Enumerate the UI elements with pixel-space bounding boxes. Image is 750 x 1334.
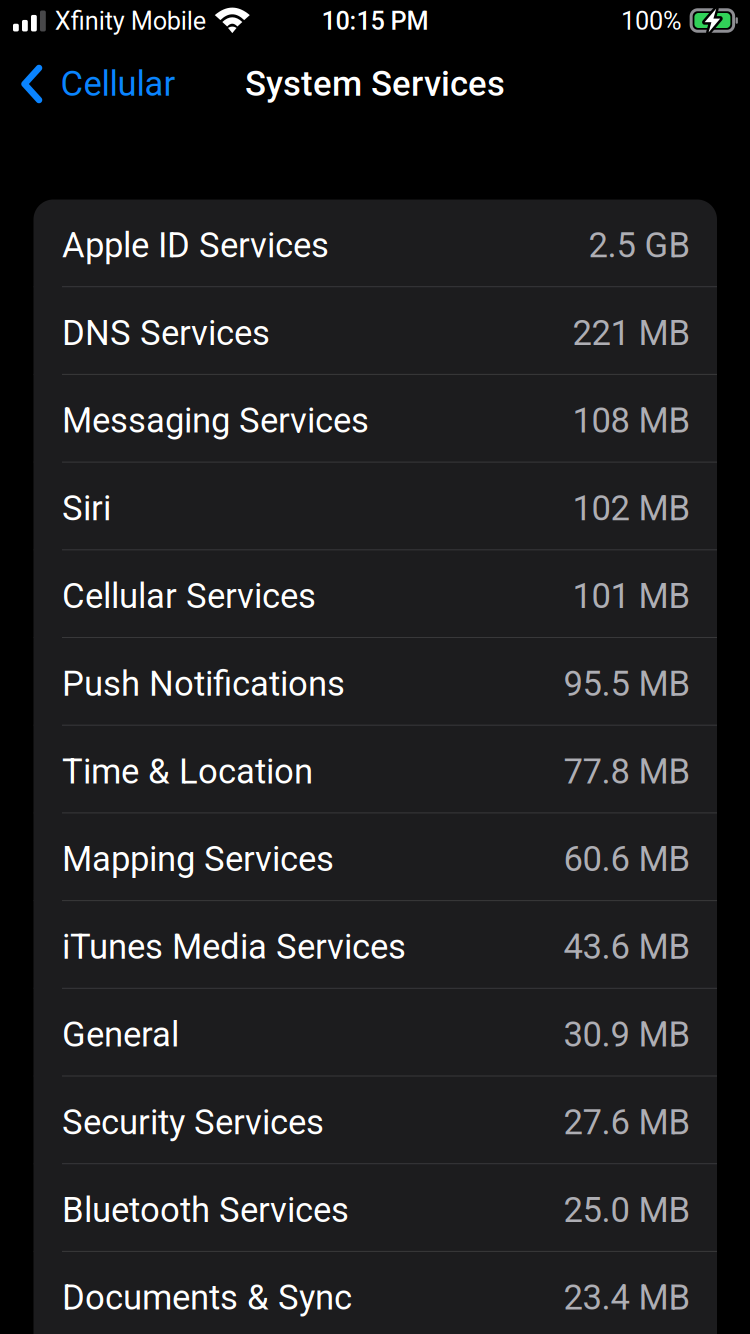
- staticText: 221 MB: [572, 313, 690, 353]
- staticText: 77.8 MB: [563, 751, 690, 792]
- staticText: 60.6 MB: [563, 839, 690, 879]
- button[interactable]: Cellular Services: [33, 550, 717, 638]
- staticText: Xfinity Mobile: [55, 6, 206, 36]
- button[interactable]: Apple ID Services: [33, 199, 717, 287]
- staticText: 25.0 MB: [563, 1190, 690, 1230]
- button[interactable]: Push Notifications: [33, 638, 717, 726]
- staticText: General: [62, 1014, 179, 1055]
- staticText: 27.6 MB: [563, 1102, 690, 1143]
- staticText: iTunes Media Services: [62, 927, 406, 967]
- staticText: Apple ID Services: [62, 225, 329, 266]
- button[interactable]: Cellular: [0, 40, 191, 128]
- staticText: DNS Services: [62, 313, 270, 353]
- button[interactable]: DNS Services: [33, 287, 717, 375]
- staticText: Time & Location: [62, 751, 313, 792]
- staticText: 30.9 MB: [563, 1014, 690, 1055]
- button[interactable]: Siri: [33, 463, 717, 550]
- button[interactable]: Mapping Services: [33, 813, 717, 901]
- staticText: Bluetooth Services: [62, 1190, 349, 1230]
- button[interactable]: Time & Location: [33, 726, 717, 813]
- staticText: 10:15 PM: [321, 6, 428, 36]
- staticText: 23.4 MB: [563, 1277, 690, 1318]
- staticText: 102 MB: [572, 488, 690, 529]
- staticText: Push Notifications: [62, 663, 345, 704]
- staticText: 95.5 MB: [563, 663, 690, 704]
- staticText: Mapping Services: [62, 839, 334, 879]
- button[interactable]: Messaging Services: [33, 375, 717, 463]
- staticText: Messaging Services: [62, 400, 369, 441]
- staticText: Cellular Services: [62, 576, 316, 616]
- staticText: Cellular: [60, 64, 175, 104]
- button[interactable]: Bluetooth Services: [33, 1164, 717, 1252]
- button[interactable]: General: [33, 989, 717, 1076]
- staticText: 43.6 MB: [563, 927, 690, 967]
- staticText: 101 MB: [572, 576, 690, 616]
- staticText: System Services: [245, 64, 505, 104]
- staticText: 100%: [621, 6, 682, 36]
- button[interactable]: Documents & Sync: [33, 1252, 717, 1334]
- staticText: 2.5 GB: [588, 225, 690, 266]
- button[interactable]: Security Services: [33, 1076, 717, 1164]
- staticText: 108 MB: [572, 400, 690, 441]
- staticText: Security Services: [62, 1102, 324, 1143]
- button[interactable]: iTunes Media Services: [33, 901, 717, 989]
- staticText: Siri: [62, 488, 111, 529]
- staticText: Documents & Sync: [62, 1277, 352, 1318]
